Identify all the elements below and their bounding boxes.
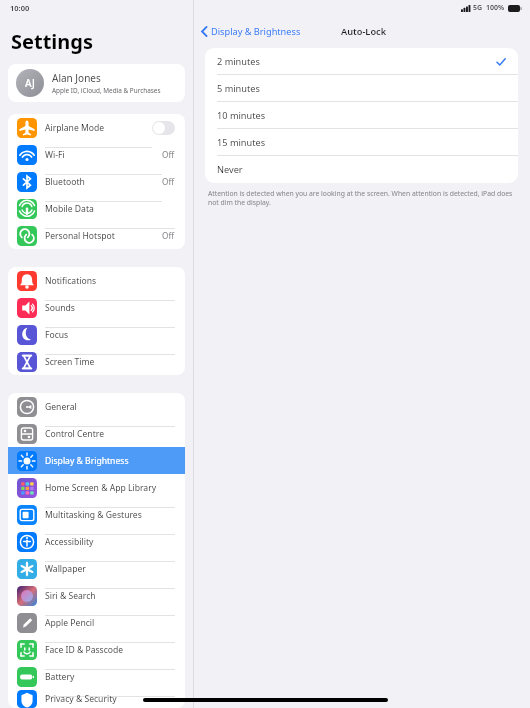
button[interactable]: Home Screen & App Library bbox=[8, 474, 185, 501]
button[interactable]: Personal Hotspot bbox=[8, 222, 185, 249]
button[interactable]: Notifications bbox=[8, 267, 185, 294]
staticText: Attention is detected when you are looki… bbox=[208, 189, 515, 207]
staticText: Off bbox=[162, 149, 175, 160]
button[interactable]: Wallpaper bbox=[8, 555, 185, 582]
staticText: Multitasking & Gestures bbox=[45, 509, 142, 521]
staticText: 15 minutes bbox=[217, 136, 266, 149]
staticText: Off bbox=[162, 230, 175, 241]
staticText: Home Screen & App Library bbox=[45, 482, 157, 494]
button[interactable]: 2 minutes bbox=[205, 48, 518, 75]
staticText: Battery bbox=[45, 671, 75, 683]
button[interactable]: General bbox=[8, 393, 185, 420]
staticText: Alan Jones bbox=[52, 71, 101, 85]
staticText: AJ bbox=[25, 76, 35, 90]
staticText: 10 minutes bbox=[217, 109, 266, 122]
button[interactable]: Airplane Mode toggle bbox=[152, 121, 175, 135]
button[interactable]: 10 minutes bbox=[205, 102, 518, 129]
button[interactable]: Apple Pencil bbox=[8, 609, 185, 636]
staticText: Never bbox=[217, 163, 243, 176]
button[interactable]: Display & Brightness bbox=[8, 447, 185, 474]
button[interactable]: Battery bbox=[8, 663, 185, 690]
button[interactable]: Wi-Fi bbox=[8, 141, 185, 168]
button[interactable]: Siri & Search bbox=[8, 582, 185, 609]
staticText: Personal Hotspot bbox=[45, 230, 115, 242]
staticText: 5 minutes bbox=[217, 82, 260, 95]
button[interactable]: 5 minutes bbox=[205, 75, 518, 102]
staticText: Wi-Fi bbox=[45, 149, 65, 161]
button[interactable]: Screen Time bbox=[8, 348, 185, 375]
button[interactable]: Accessibility bbox=[8, 528, 185, 555]
staticText: 5G bbox=[473, 3, 483, 13]
staticText: Off bbox=[162, 176, 175, 187]
button[interactable]: Mobile Data bbox=[8, 195, 185, 222]
button[interactable]: Control Centre bbox=[8, 420, 185, 447]
button[interactable]: Sounds bbox=[8, 294, 185, 321]
staticText: Mobile Data bbox=[45, 203, 94, 215]
staticText: Siri & Search bbox=[45, 590, 96, 602]
button[interactable]: Airplane Mode bbox=[8, 114, 185, 141]
button[interactable]: Privacy & Security bbox=[8, 690, 185, 708]
button[interactable]: Bluetooth bbox=[8, 168, 185, 195]
button[interactable]: Display & Brightness bbox=[201, 25, 301, 38]
staticText: Airplane Mode bbox=[45, 122, 105, 134]
staticText: Control Centre bbox=[45, 428, 104, 440]
staticText: Bluetooth bbox=[45, 176, 85, 188]
staticText: 100% bbox=[486, 3, 505, 13]
button[interactable]: Face ID & Passcode bbox=[8, 636, 185, 663]
staticText: Notifications bbox=[45, 275, 97, 287]
staticText: 2 minutes bbox=[217, 55, 260, 68]
staticText: General bbox=[45, 401, 77, 413]
button[interactable]: 15 minutes bbox=[205, 129, 518, 156]
staticText: Apple ID, iCloud, Media & Purchases bbox=[52, 86, 161, 95]
staticText: Settings bbox=[11, 28, 93, 55]
staticText: Focus bbox=[45, 329, 69, 341]
staticText: Accessibility bbox=[45, 536, 94, 548]
button[interactable]: AJ bbox=[8, 64, 185, 102]
staticText: Screen Time bbox=[45, 356, 95, 368]
staticText: Auto-Lock bbox=[341, 25, 387, 38]
staticText: Privacy & Security bbox=[45, 693, 117, 705]
staticText: Display & Brightness bbox=[45, 455, 129, 467]
staticText: Display & Brightness bbox=[211, 25, 301, 38]
button[interactable]: Focus bbox=[8, 321, 185, 348]
button[interactable]: Multitasking & Gestures bbox=[8, 501, 185, 528]
staticText: Apple Pencil bbox=[45, 617, 95, 629]
staticText: 10:00 bbox=[10, 3, 30, 13]
button[interactable]: Never bbox=[205, 156, 518, 183]
staticText: Wallpaper bbox=[45, 563, 86, 575]
staticText: Sounds bbox=[45, 302, 75, 314]
staticText: Face ID & Passcode bbox=[45, 644, 124, 656]
